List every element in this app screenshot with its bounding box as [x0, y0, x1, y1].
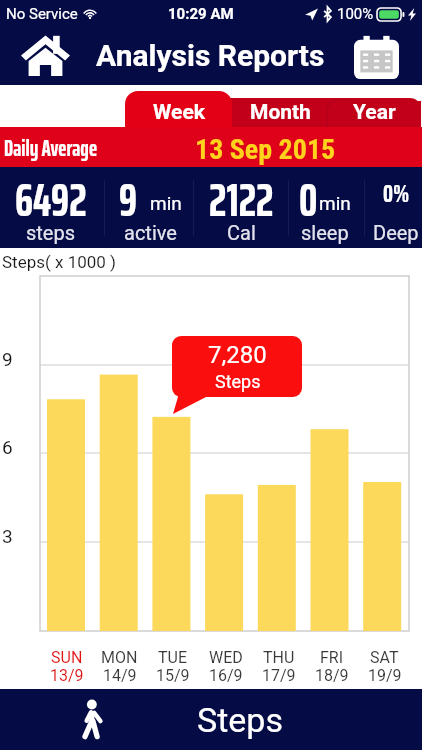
staticText: min: [150, 192, 182, 214]
button[interactable]: 9: [90, 167, 210, 248]
staticText: sleep: [301, 221, 349, 244]
button[interactable]: 0: [265, 167, 385, 248]
staticText: SAT: [370, 648, 399, 667]
staticText: No Service: [6, 5, 78, 23]
staticText: FRI: [320, 648, 344, 667]
button[interactable]: 7,280: [172, 336, 302, 397]
staticText: 16/9: [209, 666, 243, 685]
staticText: 17/9: [262, 666, 296, 685]
staticText: WED: [209, 648, 243, 667]
staticText: Steps( x 1000 ): [2, 252, 117, 272]
staticText: SUN: [51, 648, 83, 667]
button[interactable]: 0%: [336, 167, 422, 248]
staticText: Cal: [227, 221, 256, 244]
staticText: Steps: [215, 371, 261, 392]
button[interactable]: Week: [125, 91, 232, 127]
staticText: 6: [2, 436, 13, 458]
staticText: min: [319, 192, 351, 214]
staticText: 13 Sep 2015: [195, 133, 336, 166]
button[interactable]: Steps: [0, 689, 422, 750]
button[interactable]: Home: [21, 35, 70, 76]
staticText: 13/9: [50, 666, 84, 685]
button[interactable]: Calendar: [354, 35, 399, 79]
button[interactable]: Month: [232, 98, 328, 127]
staticText: Analysis Reports: [96, 38, 325, 73]
staticText: 9: [119, 164, 138, 236]
staticText: 18/9: [315, 666, 349, 685]
staticText: Year: [353, 100, 396, 125]
staticText: THU: [263, 648, 295, 667]
staticText: 3: [2, 525, 13, 547]
staticText: active: [124, 221, 177, 244]
staticText: Month: [250, 100, 311, 125]
staticText: Week: [153, 100, 205, 125]
staticText: 0%: [383, 174, 410, 213]
staticText: 7,280: [208, 341, 267, 369]
staticText: 14/9: [103, 666, 137, 685]
staticText: 9: [2, 348, 13, 370]
staticText: Steps: [197, 700, 283, 740]
staticText: 100%: [337, 5, 374, 23]
staticText: Daily Average: [4, 131, 98, 166]
staticText: 10:29 AM: [168, 5, 234, 23]
button[interactable]: Year: [328, 98, 421, 127]
staticText: TUE: [158, 648, 188, 667]
staticText: 15/9: [156, 666, 190, 685]
staticText: 19/9: [368, 666, 402, 685]
button[interactable]: 2122: [181, 167, 301, 248]
staticText: steps: [26, 221, 76, 244]
button[interactable]: 6492: [0, 167, 111, 248]
staticText: Deep: [373, 221, 419, 244]
staticText: 0: [299, 164, 318, 236]
staticText: 6492: [15, 164, 87, 236]
staticText: MON: [101, 648, 138, 667]
staticText: 2122: [209, 164, 274, 236]
